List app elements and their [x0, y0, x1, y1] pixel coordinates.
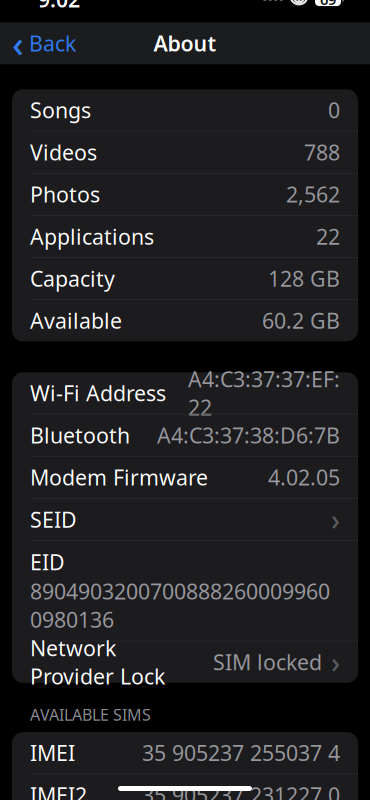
- staticText: A4:C3:37:38:D6:7B: [157, 421, 340, 449]
- staticText: Wi-Fi Address: [30, 379, 166, 407]
- button[interactable]: SEID: [12, 499, 358, 540]
- button[interactable]: Capacity: [12, 258, 358, 299]
- staticText: AVAILABLE SIMS: [30, 704, 151, 725]
- staticText: ›: [331, 501, 340, 538]
- button[interactable]: Bluetooth: [12, 414, 358, 456]
- staticText: About: [153, 29, 216, 57]
- staticText: Capacity: [30, 264, 115, 293]
- staticText: A4:C3:37:37:EF:22: [188, 365, 340, 421]
- button[interactable]: Videos: [12, 131, 358, 173]
- staticText: 4.02.05: [268, 463, 340, 491]
- button[interactable]: Network Provider Lock: [12, 641, 358, 683]
- button[interactable]: IMEI: [12, 732, 358, 774]
- staticText: 788: [304, 138, 340, 166]
- staticText: ›: [331, 643, 340, 681]
- button[interactable]: Songs: [12, 89, 358, 131]
- staticText: Network Provider Lock: [30, 634, 165, 690]
- staticText: 2,562: [286, 180, 340, 208]
- button[interactable]: IMEI2: [12, 774, 358, 800]
- staticText: Bluetooth: [30, 421, 130, 449]
- button[interactable]: Wi-Fi Address: [12, 372, 358, 414]
- staticText: 60.2 GB: [262, 306, 340, 335]
- staticText: 128 GB: [268, 264, 340, 293]
- staticText: Back: [29, 29, 76, 57]
- staticText: SEID: [30, 505, 77, 533]
- button[interactable]: Photos: [12, 173, 358, 215]
- staticText: 0: [328, 96, 340, 124]
- staticText: 69: [320, 0, 336, 9]
- staticText: IMEI: [30, 739, 75, 767]
- staticText: Videos: [30, 138, 97, 166]
- staticText: Songs: [30, 96, 91, 124]
- staticText: IMEI2: [30, 781, 87, 800]
- staticText: Applications: [30, 222, 154, 250]
- button[interactable]: Modem Firmware: [12, 456, 358, 498]
- staticText: 35 905237 255037 4: [142, 739, 340, 767]
- staticText: 89049032007008882600099600980136: [30, 577, 330, 634]
- button[interactable]: Available: [12, 300, 358, 341]
- staticText: Photos: [30, 180, 100, 208]
- button[interactable]: Applications: [12, 216, 358, 257]
- staticText: EID: [30, 548, 65, 576]
- staticText: Modem Firmware: [30, 463, 208, 491]
- button[interactable]: ‹: [4, 23, 84, 63]
- staticText: Available: [30, 306, 122, 335]
- staticText: SIM locked: [213, 648, 322, 676]
- staticText: 35 905237 231227 0: [142, 781, 340, 800]
- staticText: ‹: [12, 19, 24, 67]
- button[interactable]: EID: [12, 541, 358, 641]
- staticText: 9:02: [38, 0, 80, 13]
- staticText: 22: [316, 222, 340, 250]
